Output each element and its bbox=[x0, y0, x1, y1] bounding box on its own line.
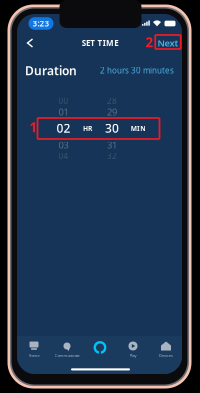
button[interactable]: Alexa bbox=[83, 335, 116, 360]
button[interactable]: Back bbox=[20, 33, 40, 53]
staticText: 2 hours 30 minutes bbox=[100, 65, 174, 76]
staticText: 32 bbox=[107, 151, 117, 161]
button[interactable]: Communicate bbox=[50, 335, 83, 360]
staticText: 03 bbox=[58, 139, 68, 151]
button[interactable]: Devices bbox=[149, 335, 182, 360]
staticText: SET TIME bbox=[82, 38, 118, 48]
button[interactable]: Hours bbox=[40, 78, 86, 178]
staticText: 02 bbox=[56, 120, 70, 136]
button[interactable]: Home bbox=[17, 335, 50, 360]
staticText: Communicate bbox=[54, 353, 79, 358]
staticText: Duration bbox=[25, 62, 77, 78]
staticText: 04 bbox=[58, 151, 68, 161]
staticText: 01 bbox=[58, 106, 68, 118]
staticText: 1 bbox=[29, 118, 37, 136]
staticText: Devices bbox=[159, 353, 173, 358]
button[interactable]: Play bbox=[116, 335, 149, 360]
staticText: 29 bbox=[107, 106, 117, 118]
button[interactable]: Minutes bbox=[89, 78, 135, 178]
staticText: 31 bbox=[107, 139, 117, 151]
staticText: 3:23 bbox=[32, 18, 49, 29]
staticText: 00 bbox=[58, 95, 68, 106]
staticText: MIN bbox=[131, 124, 145, 133]
staticText: 2 bbox=[145, 33, 153, 51]
staticText: Home bbox=[28, 353, 39, 358]
staticText: 30 bbox=[105, 120, 119, 136]
button[interactable]: Next bbox=[156, 36, 180, 50]
staticText: Next bbox=[157, 37, 178, 49]
staticText: Play bbox=[129, 353, 136, 358]
staticText: HR bbox=[83, 124, 92, 133]
staticText: 28 bbox=[107, 95, 117, 106]
